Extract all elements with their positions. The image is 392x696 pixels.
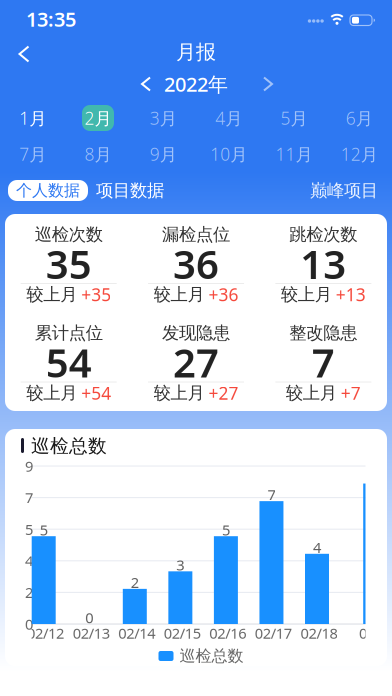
button[interactable]: 巅峰项目 [310, 180, 378, 201]
button[interactable]: Next year [253, 70, 283, 98]
staticText: 3 [176, 555, 184, 575]
staticText: 0 [359, 623, 367, 643]
staticText: 4 [25, 551, 33, 571]
staticText: 跳检次数 [289, 224, 357, 245]
staticText: 11月 [275, 142, 312, 165]
button[interactable]: Back [7, 37, 41, 71]
staticText: +36 [208, 283, 238, 306]
staticText: 巡检次数 [35, 224, 103, 245]
staticText: 2022年 [164, 71, 228, 97]
button[interactable]: 8月 [65, 136, 131, 172]
staticText: 7 [312, 335, 335, 388]
staticText: 6月 [346, 106, 373, 129]
staticText: 7 [25, 488, 33, 507]
staticText: 较上月 [26, 382, 77, 404]
staticText: 2月 [84, 106, 111, 129]
staticText: 0 [25, 614, 33, 634]
staticText: 4月 [215, 106, 242, 129]
staticText: 较上月 [286, 382, 337, 404]
staticText: 较上月 [281, 284, 332, 305]
staticText: 发现隐患 [162, 322, 230, 344]
staticText: 巡检总数 [31, 434, 107, 457]
staticText: 较上月 [153, 382, 204, 404]
button[interactable]: 9月 [131, 136, 196, 172]
staticText: 2 [25, 583, 33, 602]
staticText: +7 [341, 381, 361, 404]
button[interactable]: Previous year [131, 70, 161, 98]
staticText: 02/18 [300, 623, 337, 643]
button[interactable]: 3月 [131, 100, 196, 136]
staticText: 02/13 [73, 623, 110, 643]
staticText: 3月 [150, 106, 177, 129]
button[interactable]: 7月 [0, 136, 65, 172]
staticText: 个人数据 [16, 181, 80, 200]
staticText: 9 [25, 456, 33, 476]
staticText: 02/12 [27, 623, 64, 643]
button[interactable]: 10月 [196, 136, 261, 172]
staticText: +27 [208, 381, 238, 404]
staticText: 较上月 [26, 284, 77, 305]
staticText: 36 [173, 237, 219, 290]
staticText: 1月 [19, 106, 46, 129]
staticText: 02/15 [164, 623, 201, 643]
staticText: 10月 [210, 142, 247, 165]
staticText: 54 [46, 335, 92, 388]
staticText: 累计点位 [35, 322, 103, 344]
staticText: 02/14 [118, 623, 155, 643]
button[interactable]: 项目数据 [88, 180, 172, 201]
staticText: 02/17 [255, 623, 292, 643]
button[interactable]: 2月 [65, 100, 131, 136]
staticText: +13 [336, 283, 366, 306]
staticText: 较上月 [153, 284, 204, 305]
staticText: 35 [46, 237, 92, 290]
button[interactable]: 12月 [327, 136, 392, 172]
staticText: 5月 [280, 106, 307, 129]
staticText: 巅峰项目 [310, 180, 378, 201]
staticText: +35 [81, 283, 111, 306]
button[interactable]: 6月 [327, 100, 392, 136]
button[interactable]: 1月 [0, 100, 65, 136]
staticText: 0 [85, 608, 93, 627]
button[interactable]: 11月 [261, 136, 327, 172]
button[interactable]: 4月 [196, 100, 261, 136]
staticText: 13 [300, 237, 346, 290]
staticText: 12月 [341, 142, 378, 165]
staticText: 漏检点位 [162, 224, 230, 245]
staticText: 5 [40, 520, 48, 539]
staticText: 27 [173, 335, 219, 388]
staticText: 5 [25, 519, 33, 539]
staticText: 13:35 [26, 6, 76, 32]
staticText: 02/16 [209, 623, 246, 643]
staticText: 5 [222, 520, 230, 539]
staticText: +54 [81, 381, 111, 404]
staticText: 2 [131, 573, 139, 592]
staticText: 4 [313, 537, 321, 557]
button[interactable]: 个人数据 [8, 180, 88, 201]
staticText: 巡检总数 [179, 646, 243, 666]
staticText: 9月 [150, 142, 177, 165]
staticText: 7月 [19, 142, 46, 165]
staticText: 8月 [84, 142, 111, 165]
staticText: 项目数据 [96, 180, 164, 201]
button[interactable]: 5月 [261, 100, 327, 136]
staticText: 月报 [176, 40, 216, 64]
staticText: 7 [267, 485, 275, 504]
staticText: 整改隐患 [289, 322, 357, 344]
